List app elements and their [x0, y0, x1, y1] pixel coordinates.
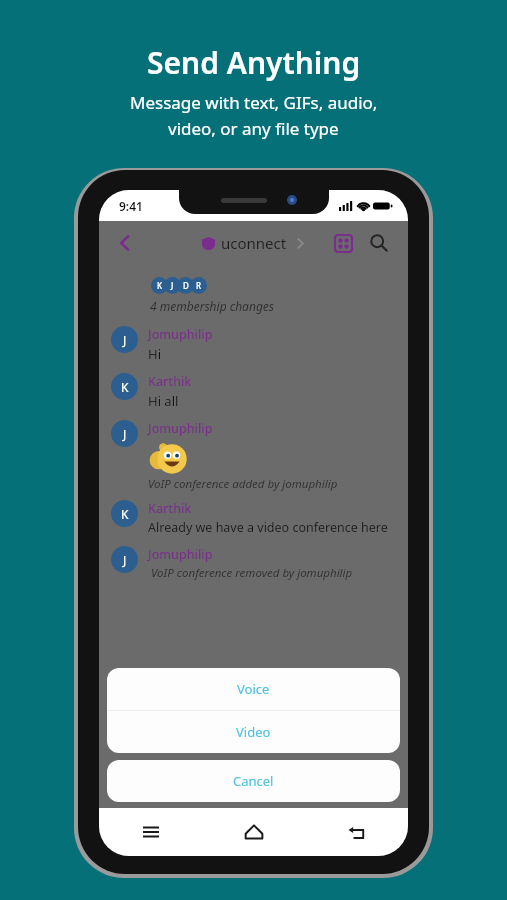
staticText: Message with text, GIFs, audio,	[130, 91, 378, 114]
staticText: Video	[236, 723, 271, 741]
button[interactable]: Back	[105, 223, 145, 263]
staticText: K	[121, 506, 129, 522]
staticText: Send Anything	[147, 42, 361, 83]
button[interactable]: J	[111, 326, 408, 363]
button[interactable]: J	[111, 546, 408, 581]
staticText: J	[123, 552, 127, 568]
button[interactable]: Apps	[326, 226, 360, 260]
staticText: Karthik	[148, 500, 192, 517]
staticText: Jomuphilip	[148, 326, 213, 343]
staticText: K	[157, 280, 163, 291]
staticText: uconnect	[221, 233, 287, 253]
staticText: Jomuphilip	[148, 420, 213, 437]
staticText: VoIP conference removed by jomuphilip	[148, 565, 353, 581]
staticText: Hi	[148, 345, 161, 363]
staticText: 9:41	[119, 198, 143, 214]
staticText: R	[196, 280, 202, 291]
button[interactable]: uconnect	[202, 233, 306, 253]
staticText: Jomuphilip	[148, 546, 213, 563]
staticText: Already we have a video conference here	[148, 519, 388, 536]
staticText: Voice	[237, 680, 270, 698]
button[interactable]: Search	[362, 226, 396, 260]
staticText: VoIP conference added by jomuphilip	[148, 476, 338, 492]
button[interactable]: Video	[107, 711, 400, 753]
staticText: K	[121, 379, 129, 395]
button[interactable]: Cancel	[107, 760, 400, 802]
staticText: D	[183, 280, 189, 291]
button[interactable]: J	[111, 420, 408, 492]
button[interactable]: Home	[202, 808, 305, 856]
button[interactable]: Menu	[99, 808, 202, 856]
staticText: Cancel	[233, 772, 274, 790]
staticText: Hi all	[148, 392, 179, 410]
staticText: J	[123, 332, 127, 348]
staticText: J	[171, 280, 174, 291]
staticText: J	[123, 426, 127, 442]
button[interactable]: K	[111, 500, 408, 536]
staticText: Karthik	[148, 373, 192, 390]
button[interactable]: Voice	[107, 668, 400, 710]
button[interactable]: K	[111, 373, 408, 410]
button[interactable]: Back	[305, 808, 408, 856]
staticText: 4 membership changes	[150, 298, 274, 314]
staticText: video, or any file type	[168, 117, 339, 140]
